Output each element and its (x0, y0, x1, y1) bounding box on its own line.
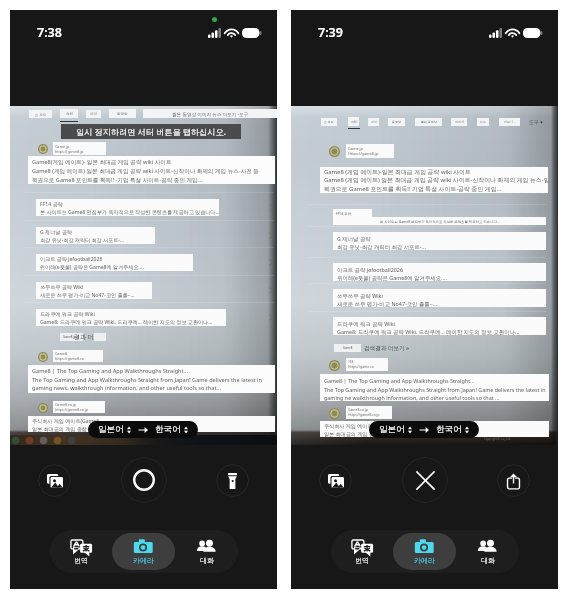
staticText: Copyright(C) Co, Ltd. (484, 437, 511, 441)
staticText: 드라쿠에 워크 공략 Wiki Game8: 드라쿠에 워크 공략 Wiki, … (40, 311, 213, 325)
staticText: 번역 (74, 556, 88, 565)
staticText: 7:38 (37, 24, 62, 41)
button[interactable]: Shutter (121, 457, 167, 503)
staticText: Game.jp Https://game8.jp (348, 146, 379, 157)
staticText: 이크트 공략 jefootball2026 위이레(e풋볼) 공략은 Game8… (337, 266, 447, 281)
staticText: 일본어 (379, 424, 405, 435)
button[interactable]: Close (402, 457, 448, 503)
staticText: 뉴스 (480, 120, 486, 124)
button[interactable]: 대화 (175, 533, 238, 570)
staticText: 동영상 (392, 120, 401, 124)
staticText: Game8.co.jp Https://game8.co.jp (348, 407, 380, 417)
staticText: 결과 더보 (74, 333, 100, 341)
staticText: Game8 | The Top Gaming and App Walkthrou… (324, 377, 546, 401)
staticText: 이미 (90, 112, 97, 116)
staticText: 전체 (351, 120, 357, 124)
staticText: Game.jp https://game8.jp (55, 144, 84, 154)
staticText: 대화 (200, 556, 214, 565)
staticText: 쇼 모드 (324, 120, 334, 124)
staticText: Game8.co.jp https://game8.co.jp (55, 402, 89, 412)
button[interactable]: Gallery (38, 464, 71, 497)
staticText: 전체 (66, 112, 73, 116)
button[interactable]: 카메라 (393, 533, 456, 570)
staticText: 한국어 (155, 424, 181, 435)
staticText: 드라쿠에 워크 공략 Wiki Game8: 드라쿠에 워크 공략 Wiki, … (337, 320, 520, 335)
staticText: Game8 https://game8.co (55, 351, 84, 361)
button[interactable]: 대화 (456, 533, 519, 570)
staticText: 주식회사 게임 에이트(Game8... 일본 최대급의 게임 종합부 wiki… (32, 418, 120, 432)
staticText: 번역 (355, 556, 369, 565)
button[interactable]: Gallery (319, 464, 352, 497)
staticText: 주식회사 게임 에이트(Game8... 일본 최대급의 게임 종합부 wiki… (324, 423, 412, 437)
staticText: 한국어 (436, 424, 462, 435)
staticText: 도구 ▾ (529, 119, 543, 126)
staticText: 짧은 동영상 이미지 뉴스 더보기 -도구 (172, 111, 249, 117)
staticText: 쓰무쓰무 공략 Wiki 새로운 쓰무 평가-비교 No47-코인 츌롤~... (40, 284, 135, 298)
staticText: 더보기 - (504, 120, 515, 124)
staticText: 이미 (371, 120, 377, 124)
staticText: 쇼 모드 (35, 112, 47, 117)
button[interactable]: Share (497, 464, 530, 497)
button[interactable]: 카메라 (112, 533, 175, 570)
staticText: 7:39 (318, 24, 343, 41)
staticText: 일본어 (98, 424, 124, 435)
staticText: Game8(게임 에이트)- 일본 최대급 게임 공략 wiki 사이트 Gam… (32, 158, 259, 183)
staticText: Game8 (343, 346, 353, 350)
staticText: 일시 정지하려면 서터 버튼을 탭하십시오. (76, 126, 226, 137)
staticText: G 제너널 공략 최강 유닛-최강 캐릭터 최강 서포트-... (40, 229, 124, 243)
button[interactable]: 번역 (50, 533, 112, 570)
staticText: Game8.jp 서 (63, 335, 80, 339)
button[interactable]: 일본어 (88, 421, 198, 438)
button[interactable]: 번역 (331, 533, 393, 570)
staticText: 카메라 (133, 556, 154, 565)
staticText: G 제너널 공략 최강 유닛-최강 캐릭터 최강 서포트-... (337, 235, 426, 250)
staticText: Game8 (게임 에이트)-일본 최대급 게임 공략 wiki 사이트 Gam… (324, 168, 548, 193)
staticText: 이크트 공략 jefootball2026 위이레(e풋볼) 공략은 Game8… (40, 256, 144, 270)
staticText: 짧은 동영상 (421, 120, 437, 124)
staticText: 게8 Https://game.co (348, 359, 374, 369)
staticText: 이미지 (455, 120, 464, 124)
staticText: FF14 공략 (336, 211, 352, 216)
button[interactable]: 일본어 (369, 421, 479, 438)
staticText: 카메라 (414, 556, 435, 565)
button[interactable]: Flashlight (216, 464, 249, 497)
staticText: 동영상 (117, 112, 128, 116)
staticText: FF14 공략 본 사이트는 Game8 편집부가 독자적으로 작성한 콘텐츠를… (40, 201, 219, 215)
staticText: 쓰무쓰무 공략 Wiki 새로운 쓰무 평가-비교 No47-코인 츌롤~... (337, 292, 438, 307)
staticText: 본 사이트는 Game8 편집부가 독자적으로 작성한 콘텐츠를 제공하고 있습… (380, 219, 500, 224)
staticText: Game8 | The Top Gaming and App Walkthrou… (32, 367, 262, 391)
staticText: 대화 (481, 556, 495, 565)
staticText: 검색결과 더보기 » (364, 344, 410, 352)
